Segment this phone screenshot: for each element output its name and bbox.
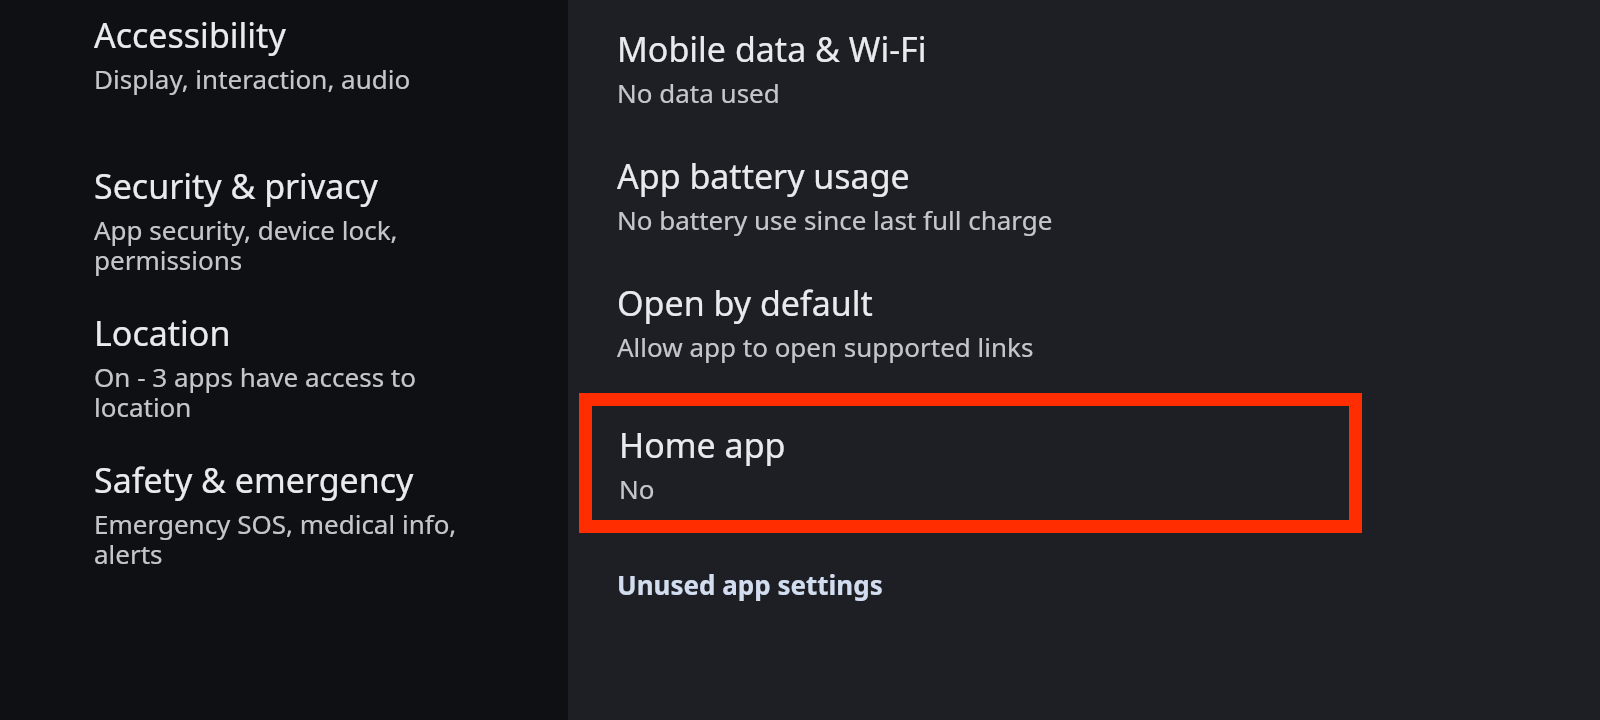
button[interactable]: Mobile data & Wi-Fi (568, 0, 1600, 110)
button[interactable]: Location (0, 310, 568, 425)
staticText: App battery usage (617, 153, 910, 199)
staticText: No battery use since last full charge (617, 202, 1053, 237)
staticText: Safety & emergency (94, 457, 414, 503)
button[interactable]: Open by default (568, 280, 1600, 364)
staticText: Unused app settings (617, 567, 883, 602)
staticText: Mobile data & Wi-Fi (617, 26, 927, 72)
button[interactable]: Home app (592, 406, 1349, 520)
staticText: Location (94, 310, 231, 356)
staticText: Security & privacy (94, 163, 378, 209)
staticText: On - 3 apps have access to location (94, 359, 416, 425)
staticText: Open by default (617, 280, 873, 326)
button[interactable]: Accessibility (0, 0, 568, 96)
button[interactable]: Safety & emergency (0, 457, 568, 572)
staticText: Emergency SOS, medical info, alerts (94, 506, 457, 572)
staticText: No data used (617, 75, 780, 110)
button[interactable]: Unused app settings (568, 563, 1600, 612)
staticText: Accessibility (94, 12, 286, 58)
staticText: Display, interaction, audio (94, 61, 411, 96)
staticText: No (619, 471, 655, 506)
button[interactable]: Security & privacy (0, 163, 568, 278)
staticText: Allow app to open supported links (617, 329, 1034, 364)
staticText: Home app (619, 422, 786, 468)
staticText: App security, device lock, permissions (94, 212, 398, 278)
button[interactable]: App battery usage (568, 153, 1600, 237)
